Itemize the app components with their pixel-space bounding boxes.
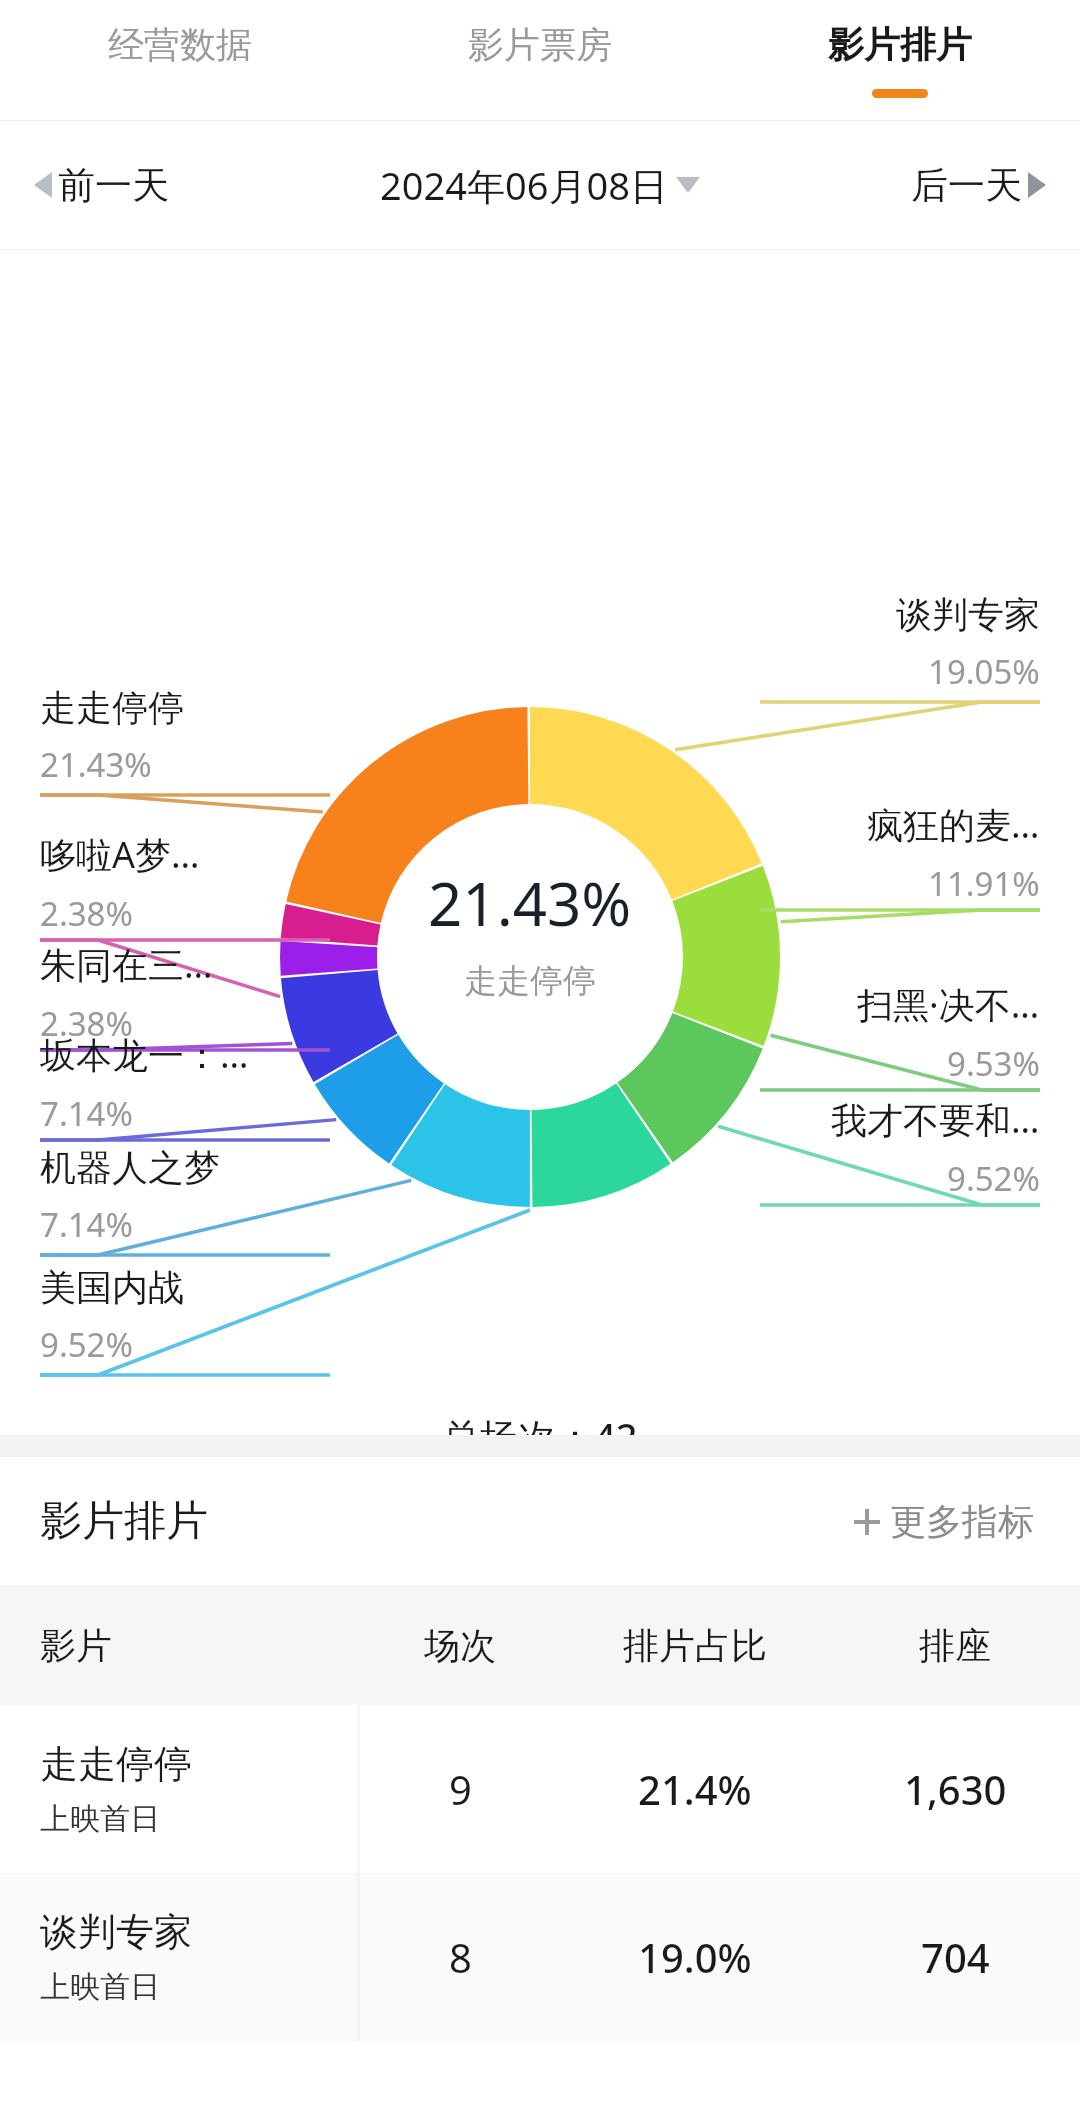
staticText: 机器人之梦 [40,1145,220,1190]
staticText: 2.38% [40,891,133,936]
staticText: 影片 [40,1623,112,1668]
button[interactable]: 谈判专家 [0,1873,1080,2041]
button[interactable]: 影片票房 [360,0,720,120]
staticText: 总场次：42 [442,1410,638,1462]
staticText: 9.53% [947,1041,1040,1086]
staticText: 朱同在三… [40,940,213,989]
button[interactable]: 后一天 [730,121,1046,249]
staticText: 美国内战 [40,1265,184,1310]
staticText: 更多指标 [890,1499,1034,1544]
button[interactable]: 走走停停 [0,1705,1080,1873]
staticText: 19.05% [928,649,1040,694]
button[interactable]: 2024年06月08日 [350,121,730,249]
button[interactable]: 经营数据 [0,0,360,120]
staticText: 影片排片 [40,1495,208,1548]
staticText: 2024年06月08日 [380,159,668,211]
staticText: 7.14% [40,1202,133,1247]
staticText: 2.38% [40,1001,133,1046]
staticText: 前一天 [58,162,169,209]
staticText: * 实时数据为估算值，可能存在偏差，请合理使用 [191,1547,889,1591]
staticText: 9.52% [947,1156,1040,1201]
button[interactable]: 影片排片 [720,0,1080,120]
staticText: 谈判专家 [40,1908,192,1956]
staticText: 影片票房 [468,22,612,67]
staticText: 21.4% [638,1762,752,1816]
staticText: 11.91% [928,861,1040,906]
staticText: 8 [449,1930,472,1984]
staticText: 21.43% [428,862,632,944]
staticText: 哆啦A梦… [40,830,200,879]
staticText: 9 [449,1762,472,1816]
staticText: 1,630 [904,1762,1007,1816]
staticText: 上映首日 [40,1968,160,2006]
staticText: 坂本龙一：… [40,1030,249,1079]
staticText: 疯狂的麦… [867,800,1040,849]
staticText: 走走停停 [40,1740,192,1788]
staticText: 场次 [424,1623,496,1668]
staticText: 经营数据 [108,22,252,67]
button[interactable]: 前一天 [34,121,350,249]
staticText: 谈判专家 [896,592,1040,637]
staticText: 排座 [919,1623,991,1668]
staticText: 排片占比 [623,1623,767,1668]
staticText: 9.52% [40,1322,133,1367]
staticText: 扫黑·决不… [857,980,1040,1029]
staticText: 我才不要和… [831,1095,1040,1144]
staticText: 影片排片 [828,22,972,67]
staticText: 上映首日 [40,1800,160,1838]
staticText: 走走停停 [40,685,184,730]
button[interactable]: 更多指标 [848,1493,1040,1550]
staticText: 21.43% [40,742,152,787]
staticText: 后一天 [911,162,1022,209]
staticText: 19.0% [638,1930,752,1984]
staticText: 7.14% [40,1091,133,1136]
staticText: 走走停停 [464,960,596,1002]
staticText: 704 [921,1930,990,1984]
